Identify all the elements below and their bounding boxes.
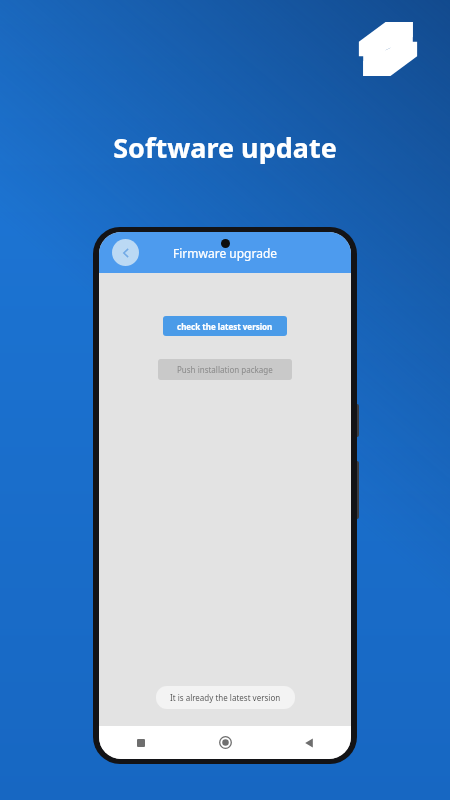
button[interactable]: Push installation package — [158, 359, 292, 380]
button[interactable]: Home — [183, 726, 267, 759]
button[interactable]: Recents — [99, 726, 183, 759]
staticText: check the latest version — [177, 321, 273, 332]
other: Logo — [357, 19, 419, 79]
staticText: It is already the latest version — [170, 692, 281, 703]
staticText: Firmware upgrade — [173, 245, 278, 261]
button[interactable]: Back — [267, 726, 351, 759]
staticText: Push installation package — [177, 364, 273, 375]
button[interactable]: Back — [112, 239, 139, 266]
button[interactable]: check the latest version — [163, 316, 287, 336]
staticText: Software update — [0, 129, 450, 166]
